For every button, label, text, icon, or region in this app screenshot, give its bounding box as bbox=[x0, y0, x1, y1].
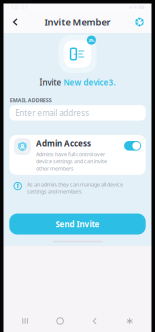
staticText: As an admin, they can manage all device … bbox=[27, 181, 123, 195]
button[interactable]: Back bbox=[7, 14, 23, 30]
button[interactable]: Recent apps bbox=[12, 313, 38, 329]
button[interactable]: Home bbox=[47, 313, 73, 329]
staticText: Admins have full control over device set… bbox=[36, 151, 107, 172]
button[interactable]: Back bbox=[82, 313, 108, 329]
button[interactable]: Send Invite bbox=[9, 213, 146, 234]
staticText: New device3. bbox=[63, 77, 115, 88]
staticText: Admin Access bbox=[36, 138, 91, 149]
staticText: 20+ bbox=[88, 37, 94, 43]
staticText: Enter email address bbox=[15, 107, 89, 118]
staticText: Send Invite bbox=[55, 219, 99, 229]
staticText: 10:41 bbox=[10, 3, 28, 12]
staticText: EMAIL ADDRESS bbox=[10, 97, 52, 104]
button[interactable]: Admin Access bbox=[124, 138, 141, 151]
button[interactable]: Accessibility bbox=[117, 313, 143, 329]
staticText: Invite Member bbox=[44, 16, 110, 28]
button[interactable]: Settings bbox=[131, 14, 147, 30]
staticText: Invite bbox=[39, 77, 61, 88]
